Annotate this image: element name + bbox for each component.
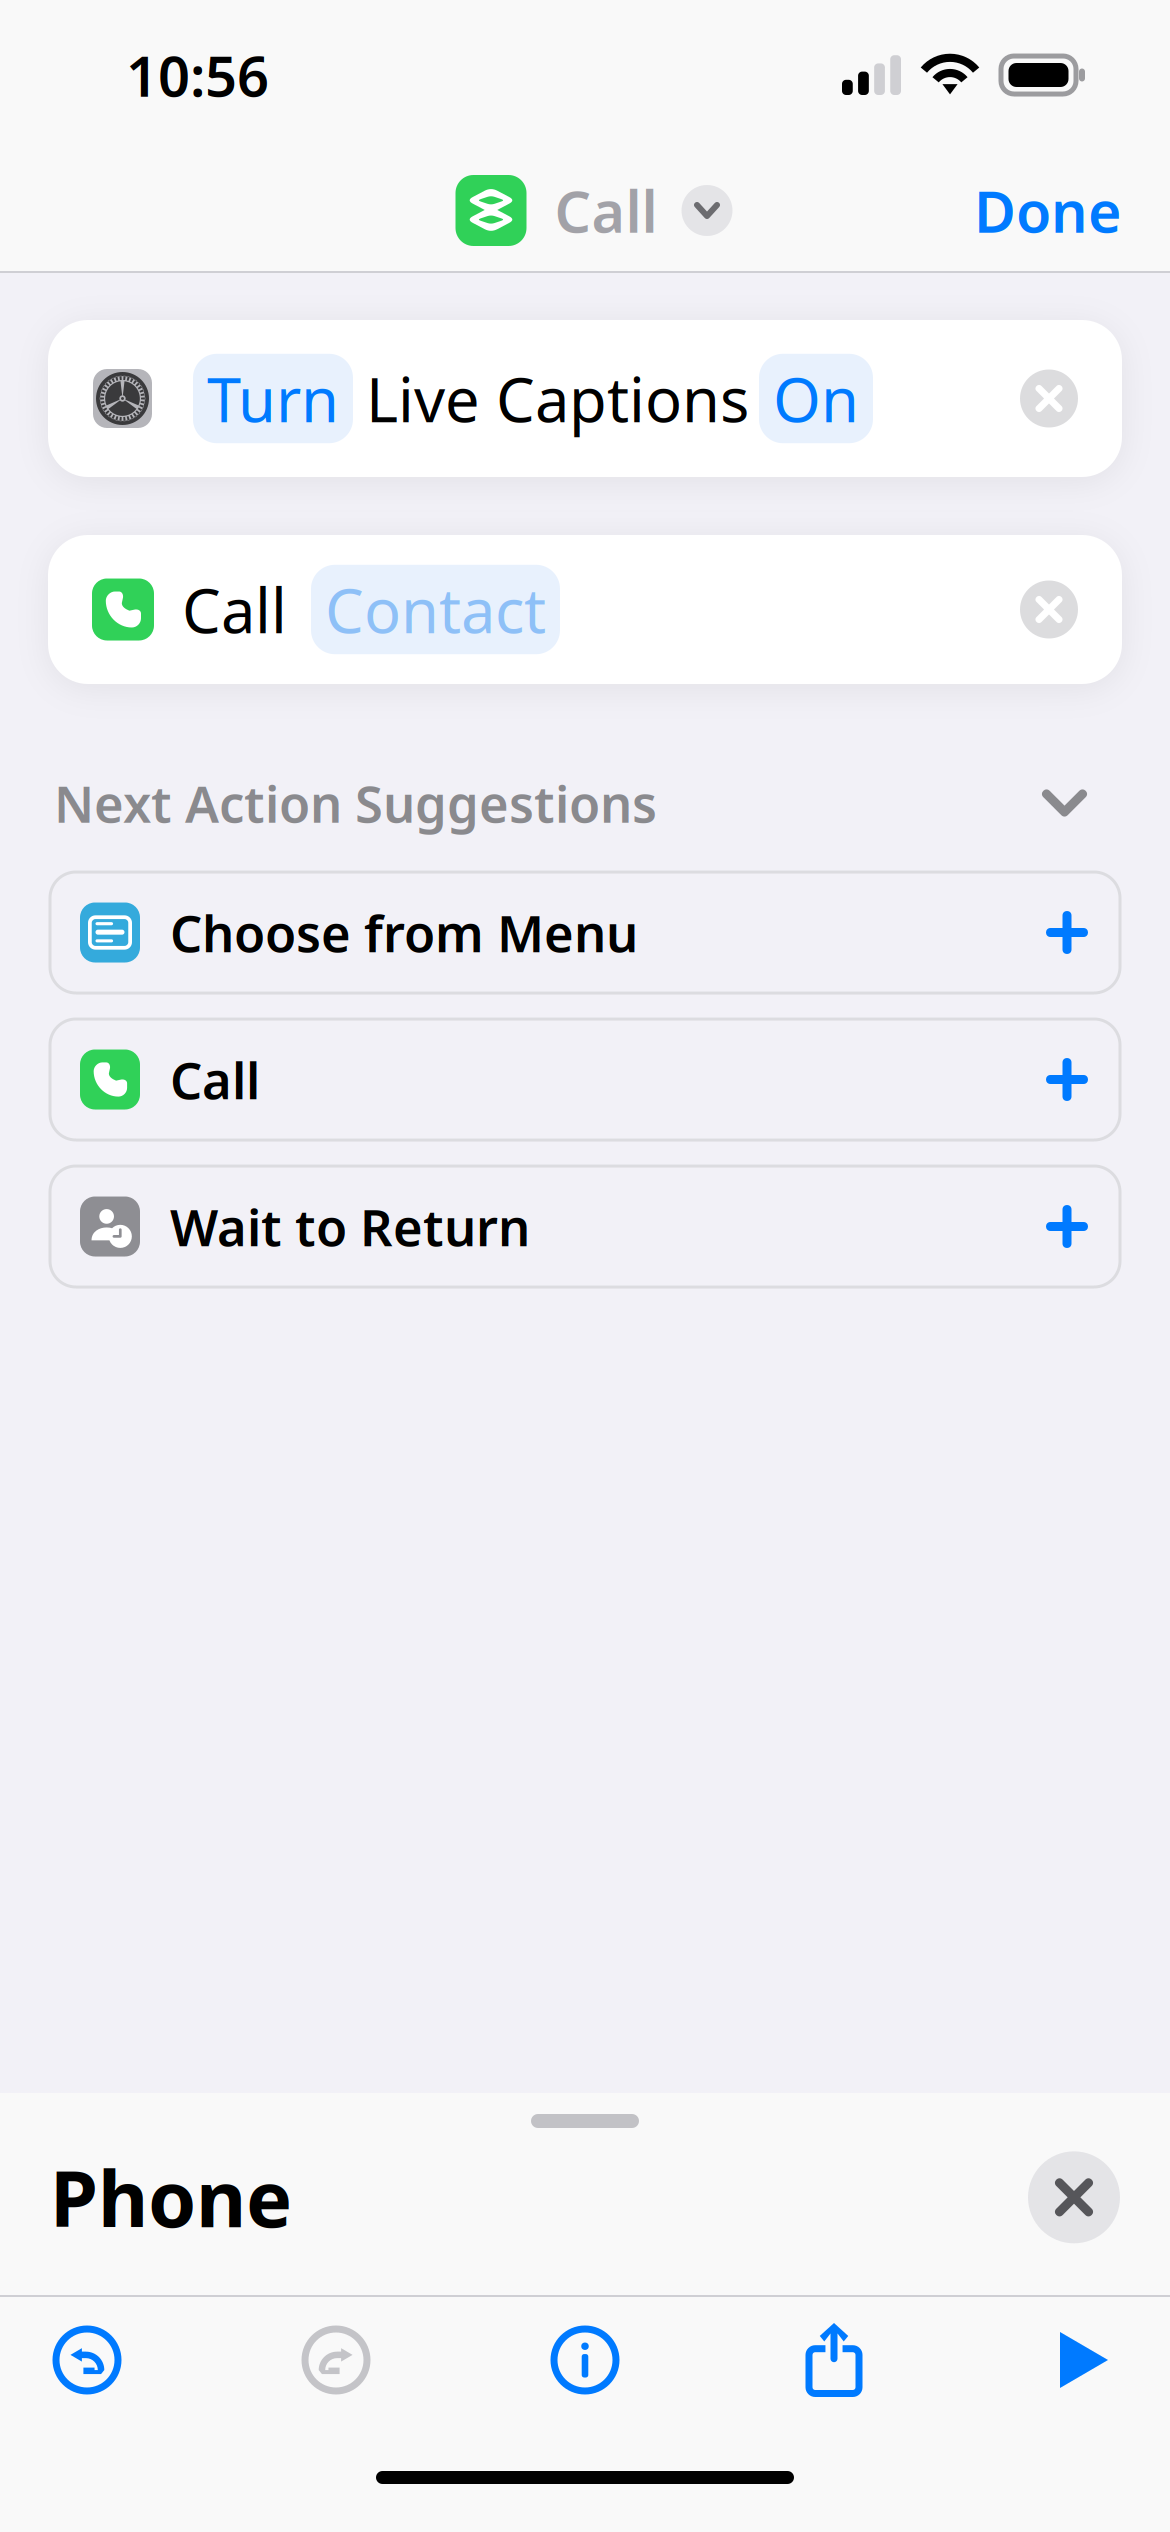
button[interactable]: Next Action Suggestions (0, 763, 1170, 843)
button[interactable]: Turn (48, 320, 1122, 477)
button[interactable]: Call (455, 172, 732, 248)
staticText: On (773, 358, 859, 439)
staticText: Phone (50, 2146, 292, 2249)
button[interactable]: Choose from Menu (50, 872, 1120, 993)
button[interactable]: Info (546, 2321, 624, 2399)
staticText: Choose from Menu (170, 899, 638, 966)
staticText: 10:56 (126, 38, 269, 112)
staticText: Wait to Return (170, 1193, 530, 1260)
staticText: Done (974, 172, 1122, 248)
staticText: Contact (325, 569, 546, 650)
button[interactable]: Close (1028, 2151, 1120, 2243)
button[interactable]: Redo (297, 2321, 375, 2399)
staticText: Turn (207, 358, 339, 439)
staticText: Call (170, 1046, 260, 1113)
staticText: Next Action Suggestions (54, 769, 657, 837)
button[interactable]: Call (48, 535, 1122, 684)
staticText: Live Captions (366, 358, 749, 439)
button[interactable]: Done (954, 160, 1142, 260)
staticText: Call (554, 172, 657, 248)
button[interactable]: Run (1044, 2321, 1122, 2399)
staticText: Call (182, 569, 287, 650)
button[interactable]: Call (50, 1019, 1120, 1140)
button[interactable]: Undo (48, 2321, 126, 2399)
button[interactable]: Share (795, 2321, 873, 2399)
button[interactable]: Wait to Return (50, 1166, 1120, 1287)
